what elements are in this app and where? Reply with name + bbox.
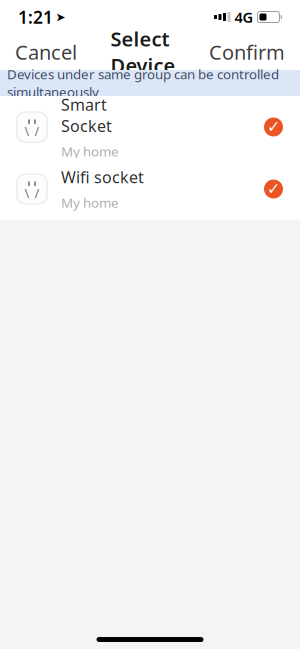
staticText: \ [24,123,29,139]
staticText: Wifi socket [61,166,144,188]
staticText: / [34,123,39,139]
staticText: / [34,185,39,201]
staticText: Select Device [110,25,175,78]
staticText: Confirm [209,39,285,65]
staticText: 4G [234,7,253,27]
button[interactable]: \ [0,96,300,158]
staticText: My home [61,194,119,211]
staticText: My home [61,142,119,160]
staticText: ✓ [267,180,280,198]
staticText: \ [24,185,29,201]
staticText: Devices under same group can be controll… [7,65,279,101]
button[interactable]: Cancel [3,31,89,73]
staticText: 1:21 [18,5,53,28]
staticText: Cancel [15,39,77,65]
staticText: ✓ [267,118,280,136]
button[interactable]: Confirm [197,31,297,73]
staticText: ➤ [55,10,65,24]
button[interactable]: \ [0,158,300,220]
staticText: Smart Socket [61,94,112,136]
